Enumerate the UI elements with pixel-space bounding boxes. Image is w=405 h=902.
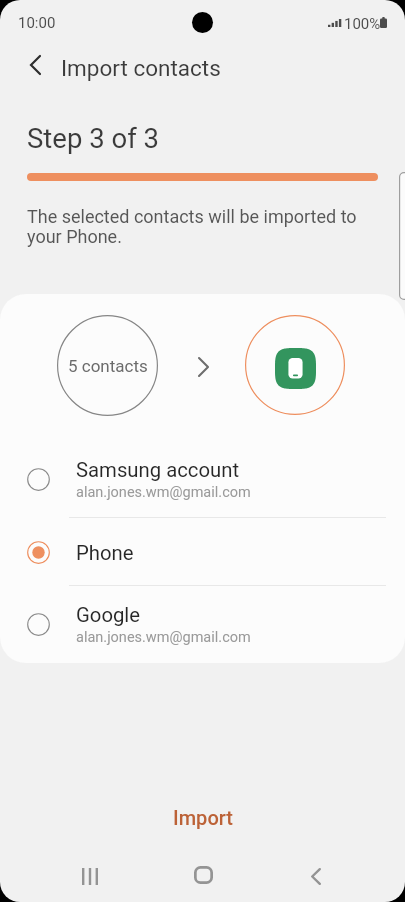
staticText: Step 3 of 3	[27, 122, 159, 154]
button[interactable]: Samsung account	[0, 440, 405, 518]
button[interactable]: Import	[0, 792, 405, 842]
button[interactable]: Navigate up	[12, 46, 58, 84]
button[interactable]: Home	[158, 850, 248, 902]
staticText: 100%	[344, 15, 381, 33]
button[interactable]: Google	[0, 585, 405, 663]
staticText: 5 contacts	[68, 356, 148, 376]
button[interactable]: Phone	[0, 518, 405, 587]
button[interactable]: Recent apps	[45, 850, 135, 902]
staticText: Samsung account	[76, 458, 240, 482]
staticText: 10:00	[18, 14, 56, 32]
staticText: alan.jones.wm@gmail.com	[76, 629, 251, 646]
staticText: Import contacts	[61, 55, 221, 81]
staticText: Import	[173, 806, 233, 829]
staticText: The selected contacts will be imported t…	[27, 206, 379, 248]
staticText: Phone	[76, 541, 134, 565]
staticText: Google	[76, 603, 141, 627]
button[interactable]: Back	[271, 850, 361, 902]
staticText: alan.jones.wm@gmail.com	[76, 484, 251, 501]
